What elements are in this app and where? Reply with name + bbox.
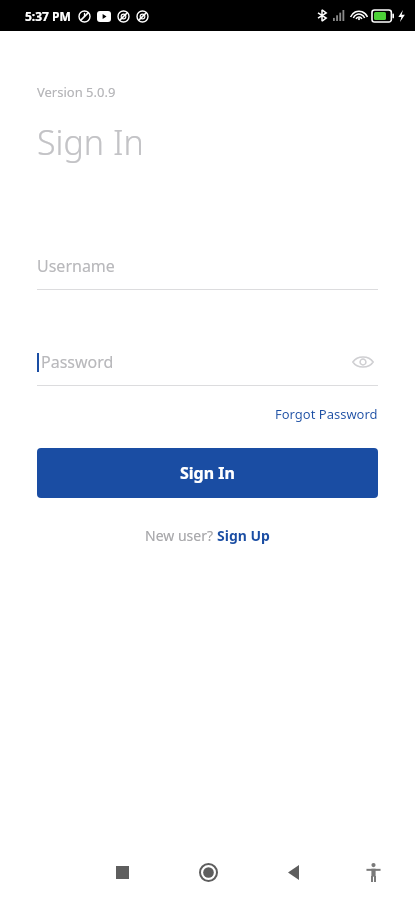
staticText: Forgot Password [275,405,378,423]
staticText: Sign In [37,119,144,165]
button[interactable]: Sign In [37,448,378,498]
staticText: Sign Up [217,526,270,545]
button[interactable]: Accessibility [353,852,393,892]
button[interactable]: Forgot Password [275,402,378,426]
button[interactable]: Show password [348,347,378,377]
button[interactable]: Username [37,243,378,289]
staticText: New user? [145,526,217,545]
staticText: Password [41,351,114,373]
button[interactable]: Password [37,339,378,385]
staticText: Username [37,255,115,277]
button[interactable]: New user? [145,526,270,545]
button[interactable]: Back [273,852,313,892]
button[interactable]: Recent apps [102,852,142,892]
staticText: Sign In [180,462,235,484]
button[interactable]: Home [186,850,230,894]
staticText: 5:37 PM [25,8,71,24]
staticText: Version 5.0.9 [37,83,116,101]
